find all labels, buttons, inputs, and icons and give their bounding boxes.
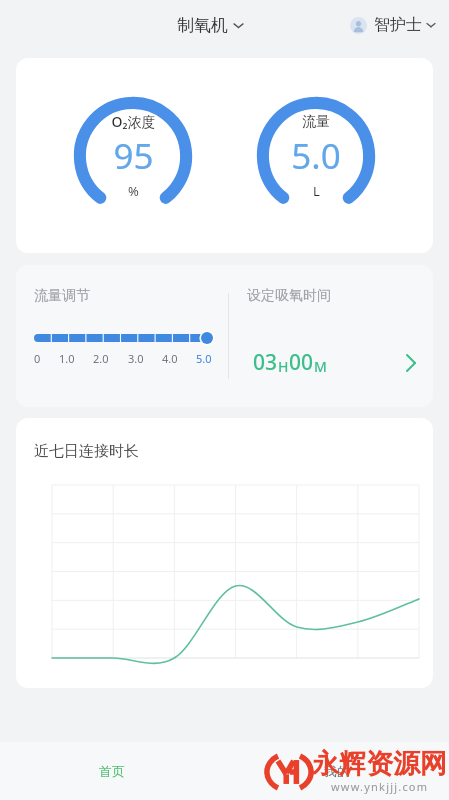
staticText: O₂浓度 — [111, 112, 156, 131]
button[interactable] — [34, 331, 214, 345]
staticText: H — [278, 357, 289, 376]
staticText: 近七日连接时长 — [34, 442, 139, 461]
staticText: 1.0 — [59, 351, 75, 366]
staticText: 3.0 — [128, 351, 144, 366]
button[interactable]: 流量 — [251, 91, 381, 221]
staticText: 智护士 — [374, 15, 422, 35]
staticText: 流量 — [302, 113, 330, 131]
other: Set oxygen time — [403, 355, 419, 371]
button[interactable]: O₂浓度 — [68, 91, 198, 221]
staticText: 5.0 — [196, 351, 212, 366]
staticText: 03 — [253, 348, 278, 377]
staticText: L — [313, 182, 320, 200]
staticText: 2.0 — [93, 351, 109, 366]
staticText: 我的 — [324, 763, 350, 779]
staticText: 设定吸氧时间 — [247, 287, 331, 305]
other: User avatar — [350, 17, 367, 34]
staticText: 永辉资源网 — [312, 747, 447, 781]
staticText: 4.0 — [162, 351, 178, 366]
staticText: M — [314, 357, 327, 376]
button[interactable]: 首页 — [0, 742, 224, 800]
staticText: 5.0 — [291, 132, 341, 180]
button[interactable]: 设定吸氧时间 — [229, 265, 433, 407]
staticText: 00 — [289, 348, 314, 377]
staticText: 制氧机 — [177, 15, 228, 36]
staticText: 首页 — [99, 763, 125, 779]
button[interactable]: 制氧机 — [173, 13, 247, 38]
staticText: www.ynkjjj.com — [331, 779, 429, 794]
button[interactable]: 流量调节 — [16, 265, 228, 407]
button[interactable]: 我的 — [224, 742, 449, 800]
button[interactable]: User avatar — [346, 13, 439, 37]
staticText: 0 — [34, 351, 41, 366]
staticText: % — [128, 182, 139, 200]
staticText: 95 — [113, 132, 154, 180]
staticText: 流量调节 — [34, 287, 90, 305]
